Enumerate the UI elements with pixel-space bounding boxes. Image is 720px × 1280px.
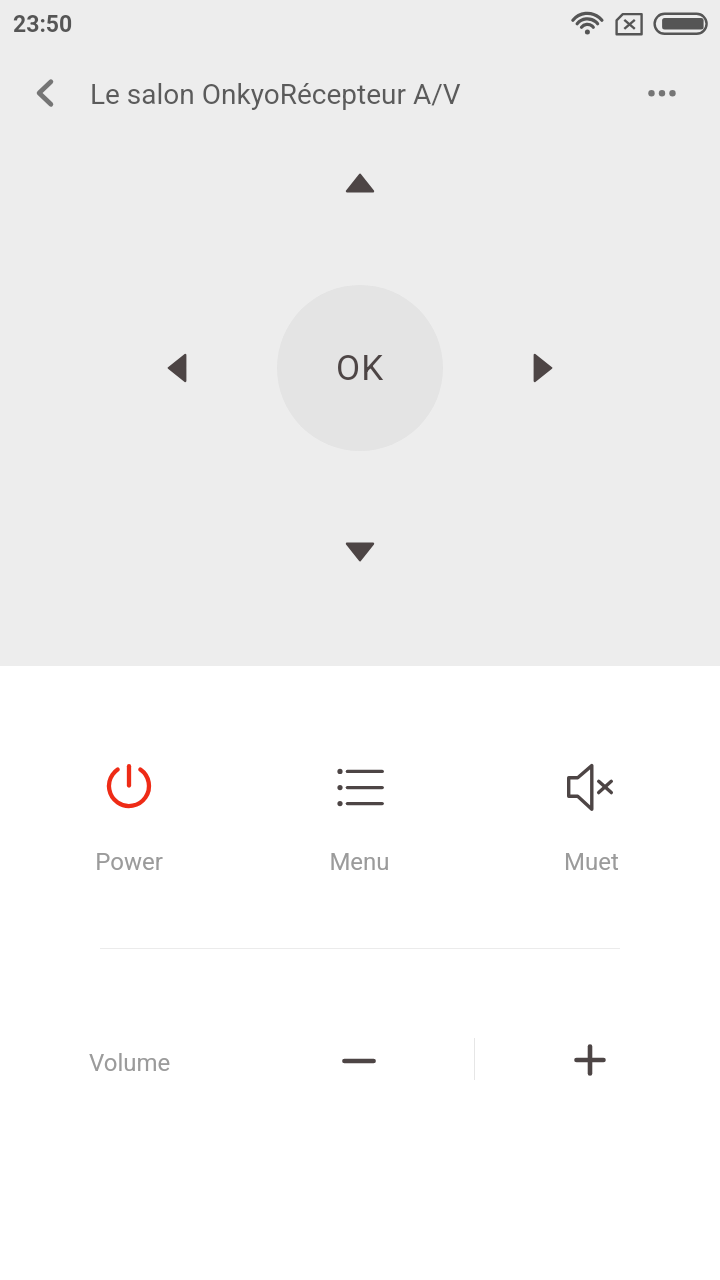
button[interactable]: Navigate right [513, 338, 573, 398]
staticText: Power [95, 848, 163, 876]
button[interactable]: More options [638, 70, 686, 118]
button[interactable]: Navigate left [147, 338, 207, 398]
staticText: Volume [89, 1049, 171, 1077]
staticText: 23:50 [13, 11, 73, 38]
button[interactable]: Menu [279, 758, 439, 876]
staticText: Le salon OnkyoRécepteur A/V [90, 78, 461, 111]
button[interactable]: Back [21, 69, 69, 117]
button[interactable]: Muet [511, 758, 671, 876]
button[interactable]: Navigate down [330, 522, 390, 582]
button[interactable]: Volume down [329, 1031, 389, 1091]
button[interactable]: Power [49, 758, 209, 876]
staticText: Muet [564, 848, 619, 876]
staticText: Menu [329, 848, 390, 876]
button[interactable]: Volume up [560, 1030, 620, 1090]
staticText: OK [336, 348, 385, 389]
button[interactable]: OK [277, 285, 443, 451]
button[interactable]: Navigate up [330, 153, 390, 213]
